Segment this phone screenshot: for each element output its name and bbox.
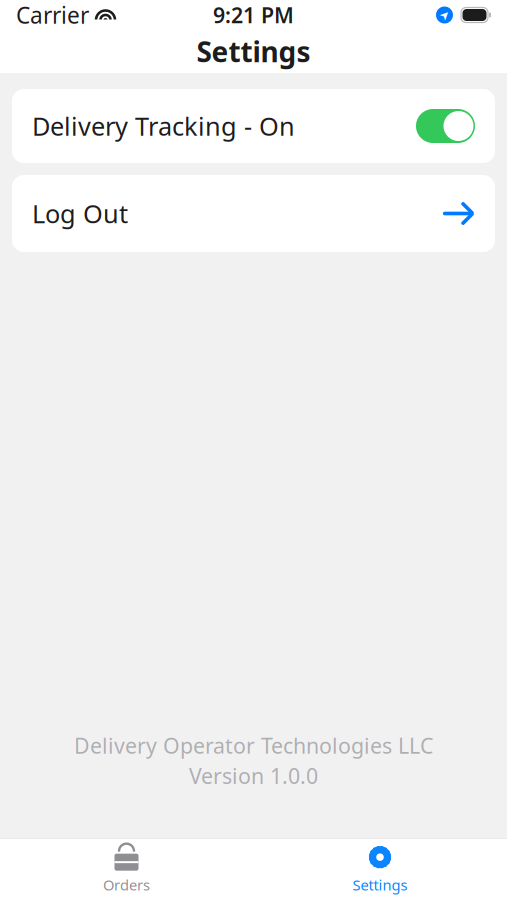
staticText: Carrier: [16, 0, 89, 30]
staticText: Log Out: [32, 197, 128, 230]
staticText: ➤: [439, 8, 449, 22]
button[interactable]: Orders: [0, 839, 253, 900]
staticText: Version 1.0.0: [189, 762, 318, 790]
staticText: Settings: [352, 875, 407, 895]
staticText: Delivery Operator Technologies LLC: [74, 731, 433, 760]
button[interactable]: Settings: [253, 839, 507, 900]
staticText: 9:21 PM: [213, 1, 294, 29]
staticText: Settings: [196, 33, 310, 70]
staticText: Delivery Tracking - On: [32, 109, 295, 143]
staticText: Orders: [103, 875, 150, 895]
button[interactable]: Delivery Tracking - On: [12, 89, 495, 163]
button[interactable]: Log Out: [12, 175, 495, 252]
